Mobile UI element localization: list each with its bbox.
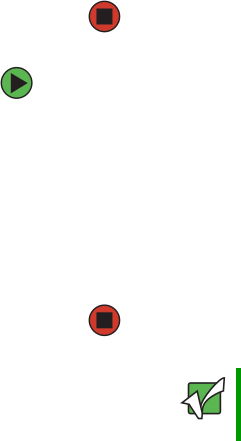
button[interactable]: Play [1, 67, 33, 99]
button[interactable]: Confirm [180, 374, 226, 424]
button[interactable]: Stop [89, 1, 120, 32]
button[interactable]: Stop [89, 304, 120, 336]
